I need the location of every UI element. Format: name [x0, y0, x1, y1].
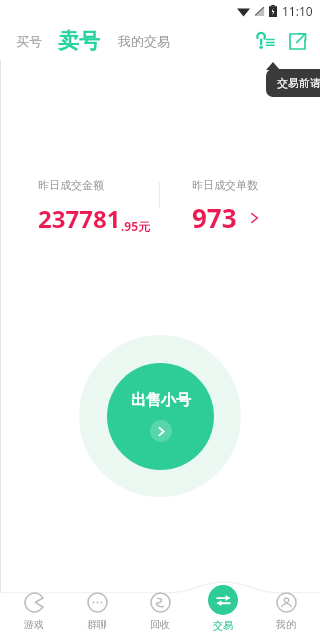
button[interactable]: 出售小号 [107, 363, 214, 470]
button[interactable]: 昨日成交金额 [0, 178, 159, 235]
button[interactable]: 卖号 [54, 26, 104, 56]
staticText: 卖号 [58, 28, 100, 54]
button[interactable]: 买号 [12, 29, 46, 53]
button[interactable]: 交易 [194, 591, 252, 636]
button[interactable]: Share [284, 28, 310, 54]
staticText: 交易前请仔细阅读规则 [277, 76, 320, 90]
button[interactable]: 交易前请仔细阅读规则 [266, 69, 320, 97]
staticText: 我的交易 [118, 33, 170, 49]
staticText: 买号 [16, 33, 42, 49]
staticText: 游戏 [24, 618, 44, 631]
staticText: 973 [192, 200, 237, 235]
button[interactable]: 昨日成交单数 [160, 178, 320, 235]
staticText: 237781 [38, 202, 121, 235]
staticText: 11:10 [282, 3, 313, 19]
button[interactable]: 我的交易 [114, 29, 174, 53]
staticText: .95元 [121, 218, 151, 234]
button[interactable]: 游戏 [5, 591, 63, 632]
button[interactable]: Help [254, 29, 278, 53]
staticText: 昨日成交单数 [192, 178, 258, 192]
staticText: 出售小号 [131, 391, 191, 410]
staticText: 群聊 [87, 618, 107, 631]
button[interactable]: 群聊 [68, 591, 126, 632]
staticText: 我的 [276, 618, 296, 631]
button[interactable]: 回收 [131, 591, 189, 632]
button[interactable]: 我的 [257, 591, 315, 632]
staticText: 交易 [213, 619, 233, 632]
staticText: 回收 [150, 618, 170, 631]
staticText: 昨日成交金额 [38, 178, 104, 192]
